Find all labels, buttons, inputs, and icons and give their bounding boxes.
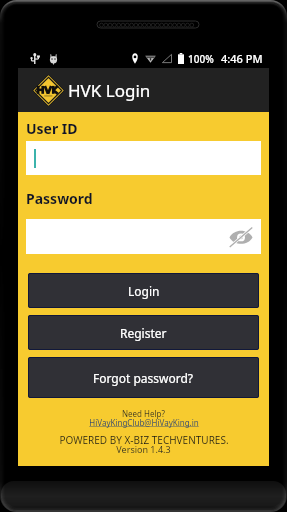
staticText: HiVayKingClub@HiVayKing.in	[89, 417, 199, 428]
staticText: Password	[26, 189, 93, 208]
staticText: HVK Login	[68, 79, 151, 102]
staticText: POWERED BY X-BIZ TECHVENTURES.	[59, 433, 229, 447]
button[interactable]: Register	[28, 315, 259, 350]
staticText: Need Help?	[122, 408, 165, 419]
button[interactable]: Toggle password visibility	[228, 226, 253, 248]
staticText: User ID	[26, 119, 78, 138]
button[interactable]: Login	[28, 273, 259, 308]
button[interactable]: HiVayKingClub@HiVayKing.in	[89, 417, 199, 428]
staticText: Forgot password?	[93, 370, 194, 386]
staticText: Version 1.4.3	[116, 443, 171, 455]
staticText: Login	[128, 283, 160, 299]
button[interactable]: Forgot password?	[28, 357, 259, 398]
staticText: 100%	[188, 52, 214, 66]
staticText: 4:46 PM	[221, 51, 263, 66]
staticText: Register	[120, 325, 167, 341]
